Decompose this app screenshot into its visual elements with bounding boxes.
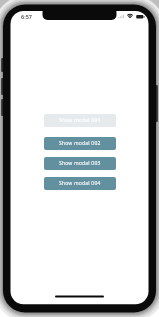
- button[interactable]: Show modal 004: [44, 177, 116, 190]
- staticText: 6:57: [21, 13, 32, 20]
- staticText: Show modal 004: [59, 180, 101, 187]
- staticText: Show modal 003: [59, 160, 101, 167]
- button[interactable]: Show modal 002: [44, 137, 116, 150]
- staticText: Show modal 001: [59, 117, 101, 124]
- button[interactable]: Show modal 001: [44, 114, 116, 127]
- button[interactable]: Show modal 003: [44, 157, 116, 170]
- staticText: Show modal 002: [59, 140, 101, 147]
